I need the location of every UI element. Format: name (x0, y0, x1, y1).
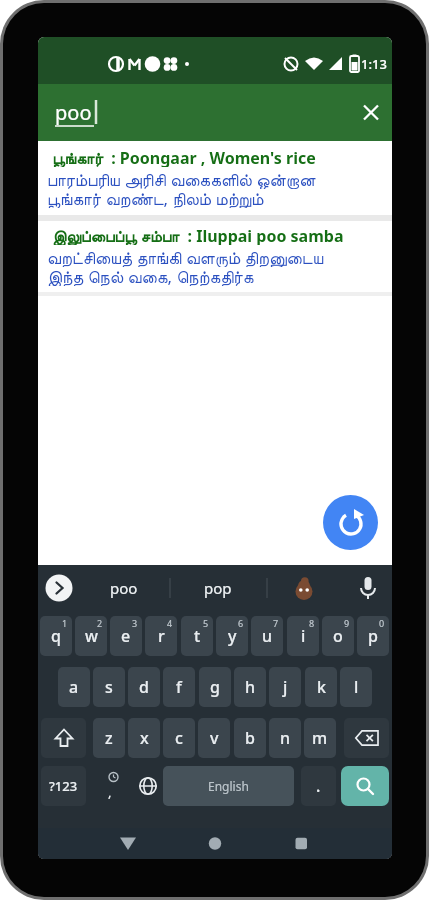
button[interactable] (348, 565, 392, 611)
staticText: 0 (379, 617, 385, 629)
staticText: 9 (344, 617, 350, 629)
staticText: v (210, 727, 219, 749)
staticText: s (105, 676, 113, 698)
button[interactable]: q (40, 616, 72, 656)
staticText: இந்த நெல் வகை, நெற்கதிர்க (47, 265, 254, 286)
staticText: w (85, 625, 98, 647)
button[interactable]: a (58, 667, 90, 707)
staticText: o (333, 625, 343, 647)
staticText: j (283, 676, 288, 698)
staticText: , (108, 783, 112, 801)
staticText: p (368, 625, 378, 647)
button[interactable] (274, 565, 334, 611)
button[interactable] (344, 718, 389, 758)
staticText: x (140, 727, 149, 749)
button[interactable] (132, 766, 163, 806)
staticText: t (194, 625, 201, 647)
staticText: a (69, 676, 79, 698)
button[interactable] (41, 718, 86, 758)
button[interactable] (172, 565, 266, 611)
button[interactable]: n (269, 718, 301, 758)
staticText: பூங்கார் வறண்ட, நிலம் மற்றும் (47, 187, 264, 208)
staticText: z (105, 727, 113, 749)
staticText: poo (55, 99, 92, 126)
button[interactable]: j (269, 667, 301, 707)
staticText: English (208, 778, 249, 794)
button[interactable]: w (75, 616, 107, 656)
staticText: 8 (309, 617, 315, 629)
staticText: r (158, 625, 165, 647)
staticText: poo (110, 578, 138, 598)
button[interactable]: t (181, 616, 213, 656)
button[interactable]: . (301, 766, 336, 806)
button[interactable] (281, 828, 321, 859)
staticText: y (228, 625, 237, 647)
button[interactable]: z (93, 718, 125, 758)
staticText: 4 (167, 617, 173, 629)
button[interactable] (42, 569, 76, 607)
button[interactable] (341, 766, 389, 806)
staticText: u (262, 625, 273, 647)
staticText: k (317, 676, 326, 698)
staticText: பூங்கார் : Poongaar , Women's rice (52, 147, 316, 167)
button[interactable]: r (145, 616, 177, 656)
button[interactable]: h (234, 667, 266, 707)
button[interactable]: English (163, 766, 294, 806)
button[interactable]: k (305, 667, 337, 707)
button[interactable]: u (251, 616, 283, 656)
button[interactable]: s (93, 667, 125, 707)
staticText: ?123 (49, 777, 78, 795)
button[interactable] (323, 495, 378, 550)
staticText: l (354, 676, 359, 698)
button[interactable]: g (199, 667, 231, 707)
button[interactable]: b (234, 718, 266, 758)
button[interactable]: e (110, 616, 142, 656)
button[interactable]: v (198, 718, 230, 758)
staticText: q (51, 625, 61, 647)
staticText: 2 (97, 617, 103, 629)
staticText: n (280, 727, 291, 749)
button[interactable]: c (163, 718, 195, 758)
staticText: f (176, 676, 182, 698)
staticText: 1 (62, 617, 68, 629)
button[interactable]: ?123 (41, 766, 86, 806)
staticText: இலுப்பைப்பூ சம்பா : Iluppai poo samba (52, 225, 344, 245)
button[interactable] (195, 828, 235, 859)
staticText: c (175, 727, 183, 749)
button[interactable] (38, 141, 392, 219)
button[interactable]: f (163, 667, 195, 707)
button[interactable]: d (128, 667, 160, 707)
button[interactable] (38, 221, 392, 295)
button[interactable]: i (287, 616, 319, 656)
staticText: h (245, 676, 256, 698)
staticText: 6 (238, 617, 244, 629)
button[interactable]: m (304, 718, 336, 758)
staticText: e (121, 625, 131, 647)
button[interactable] (84, 565, 169, 611)
staticText: 7 (273, 617, 279, 629)
staticText: 3 (132, 617, 138, 629)
staticText: pop (204, 578, 232, 598)
button[interactable]: l (340, 667, 372, 707)
staticText: g (210, 676, 220, 698)
staticText: b (245, 727, 255, 749)
staticText: d (139, 676, 149, 698)
staticText: . (316, 775, 321, 797)
button[interactable] (108, 828, 148, 859)
staticText: பாரம்பரிய அரிசி வகைகளில் ஒன்றான (47, 168, 316, 189)
button[interactable]: p (357, 616, 389, 656)
staticText: i (301, 625, 306, 647)
staticText: 1:13 (361, 55, 387, 73)
button[interactable]: , (96, 766, 127, 806)
button[interactable]: x (128, 718, 160, 758)
button[interactable]: y (216, 616, 248, 656)
staticText: வறட்சியைத் தாங்கி வளரும் திறனுடைய (47, 246, 324, 267)
staticText: 5 (203, 617, 209, 629)
staticText: m (312, 727, 328, 749)
button[interactable] (353, 94, 389, 130)
button[interactable]: o (322, 616, 354, 656)
